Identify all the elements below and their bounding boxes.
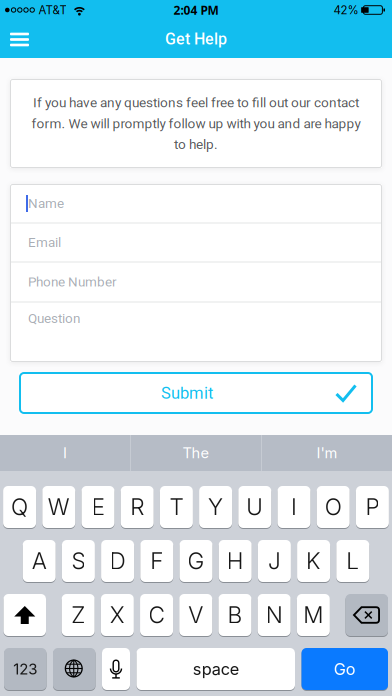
button[interactable] (345, 594, 388, 636)
staticText: Y (208, 493, 223, 521)
button[interactable]: Question (10, 302, 382, 361)
staticText: I'm (316, 444, 337, 462)
button[interactable] (102, 648, 130, 690)
button[interactable]: Y (199, 486, 232, 528)
staticText: R (130, 493, 144, 521)
staticText: P (365, 493, 379, 521)
staticText: Get Help (165, 30, 227, 48)
button[interactable]: Q (3, 486, 36, 528)
staticText: D (110, 547, 126, 575)
button[interactable]: L (336, 540, 369, 582)
staticText: A (32, 547, 47, 575)
button[interactable]: Z (62, 594, 95, 636)
staticText: Name (28, 196, 64, 211)
staticText: If you have any questions feel free to f… (33, 95, 359, 110)
button[interactable]: B (218, 594, 251, 636)
button[interactable]: P (356, 486, 389, 528)
button[interactable]: R (121, 486, 154, 528)
staticText: I (291, 493, 297, 521)
button[interactable]: U (238, 486, 271, 528)
staticText: O (325, 493, 342, 521)
staticText: The (182, 444, 209, 462)
staticText: 42% (333, 3, 358, 17)
staticText: form. We will promptly follow up with yo… (31, 115, 360, 131)
staticText: M (303, 601, 323, 629)
staticText: B (227, 601, 242, 629)
button[interactable]: M (297, 594, 330, 636)
button[interactable]: space (136, 648, 295, 690)
staticText: Question (28, 310, 80, 326)
button[interactable]: V (179, 594, 212, 636)
button[interactable]: H (219, 540, 252, 582)
staticText: J (268, 547, 281, 575)
staticText: E (91, 493, 104, 521)
button[interactable]: F (140, 540, 173, 582)
staticText: L (346, 547, 359, 575)
button[interactable] (0, 26, 29, 52)
staticText: U (246, 493, 263, 521)
button[interactable]: N (258, 594, 291, 636)
staticText: to help. (174, 136, 218, 152)
staticText: 123 (13, 660, 37, 678)
staticText: Phone Number (28, 274, 117, 290)
button[interactable]: A (23, 540, 56, 582)
button[interactable]: S (62, 540, 95, 582)
staticText: T (169, 493, 183, 521)
button[interactable]: The (131, 435, 261, 471)
staticText: C (149, 601, 165, 629)
staticText: Email (28, 235, 61, 250)
staticText: Z (71, 601, 85, 629)
staticText: H (227, 547, 244, 575)
staticText: Go (334, 659, 356, 679)
button[interactable]: X (101, 594, 134, 636)
button[interactable]: I (0, 435, 130, 471)
button[interactable]: J (258, 540, 291, 582)
button[interactable]: 123 (4, 648, 46, 690)
staticText: X (110, 601, 125, 629)
button[interactable]: Submit (19, 372, 373, 414)
button[interactable]: O (317, 486, 350, 528)
button[interactable] (53, 648, 95, 690)
staticText: G (187, 547, 204, 575)
button[interactable]: W (42, 486, 75, 528)
staticText: 2:04 PM (173, 2, 218, 18)
button[interactable]: K (297, 540, 330, 582)
staticText: AT&T (38, 3, 66, 17)
staticText: Submit (161, 383, 213, 403)
staticText: F (150, 547, 163, 575)
staticText: N (266, 601, 283, 629)
button[interactable]: Name (10, 184, 382, 222)
button[interactable]: G (179, 540, 212, 582)
button[interactable]: E (81, 486, 114, 528)
button[interactable]: D (101, 540, 134, 582)
button[interactable]: I'm (262, 435, 392, 471)
staticText: K (306, 547, 321, 575)
staticText: S (71, 547, 85, 575)
button[interactable]: Phone Number (10, 262, 382, 301)
staticText: W (48, 493, 70, 521)
staticText: V (188, 601, 203, 629)
staticText: space (193, 659, 239, 679)
button[interactable]: C (140, 594, 173, 636)
button[interactable] (3, 594, 46, 636)
button[interactable]: Go (301, 648, 388, 690)
staticText: Q (11, 493, 28, 521)
button[interactable]: T (160, 486, 193, 528)
button[interactable]: I (277, 486, 310, 528)
staticText: I (63, 444, 67, 462)
button[interactable]: Email (10, 223, 382, 261)
